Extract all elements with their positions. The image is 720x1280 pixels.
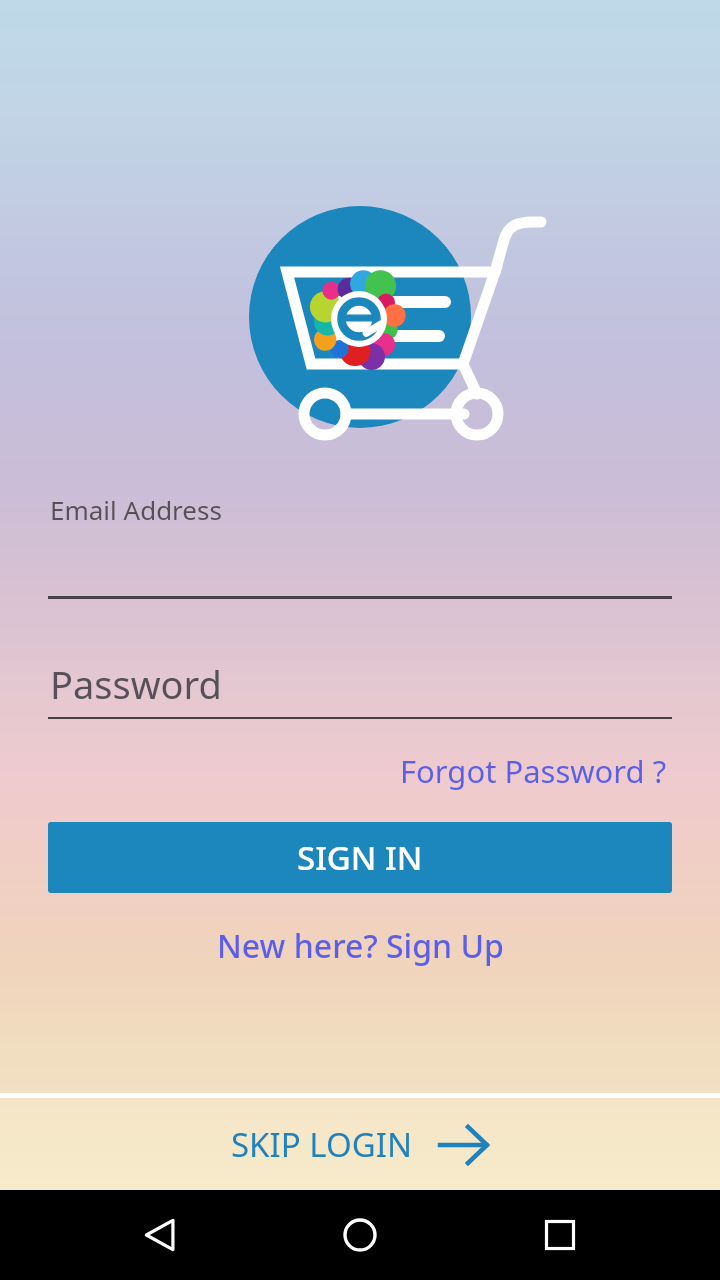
other: eShop logo (249, 206, 471, 428)
button[interactable]: SIGN IN (48, 822, 672, 893)
staticText: Password (50, 658, 222, 710)
button[interactable] (48, 650, 672, 716)
button[interactable] (48, 560, 672, 600)
button[interactable]: Home (310, 1190, 410, 1280)
button[interactable]: SKIP LOGIN (0, 1098, 720, 1190)
staticText: Email Address (50, 492, 222, 527)
staticText: New here? Sign Up (217, 924, 504, 968)
button[interactable]: Forgot Password ? (390, 744, 677, 798)
staticText: SKIP LOGIN (231, 1122, 412, 1167)
staticText: SIGN IN (297, 835, 423, 880)
button[interactable]: Back (110, 1190, 210, 1280)
button[interactable]: Recent apps (510, 1190, 610, 1280)
button[interactable]: New here? Sign Up (203, 918, 518, 974)
staticText: Forgot Password ? (400, 750, 667, 792)
